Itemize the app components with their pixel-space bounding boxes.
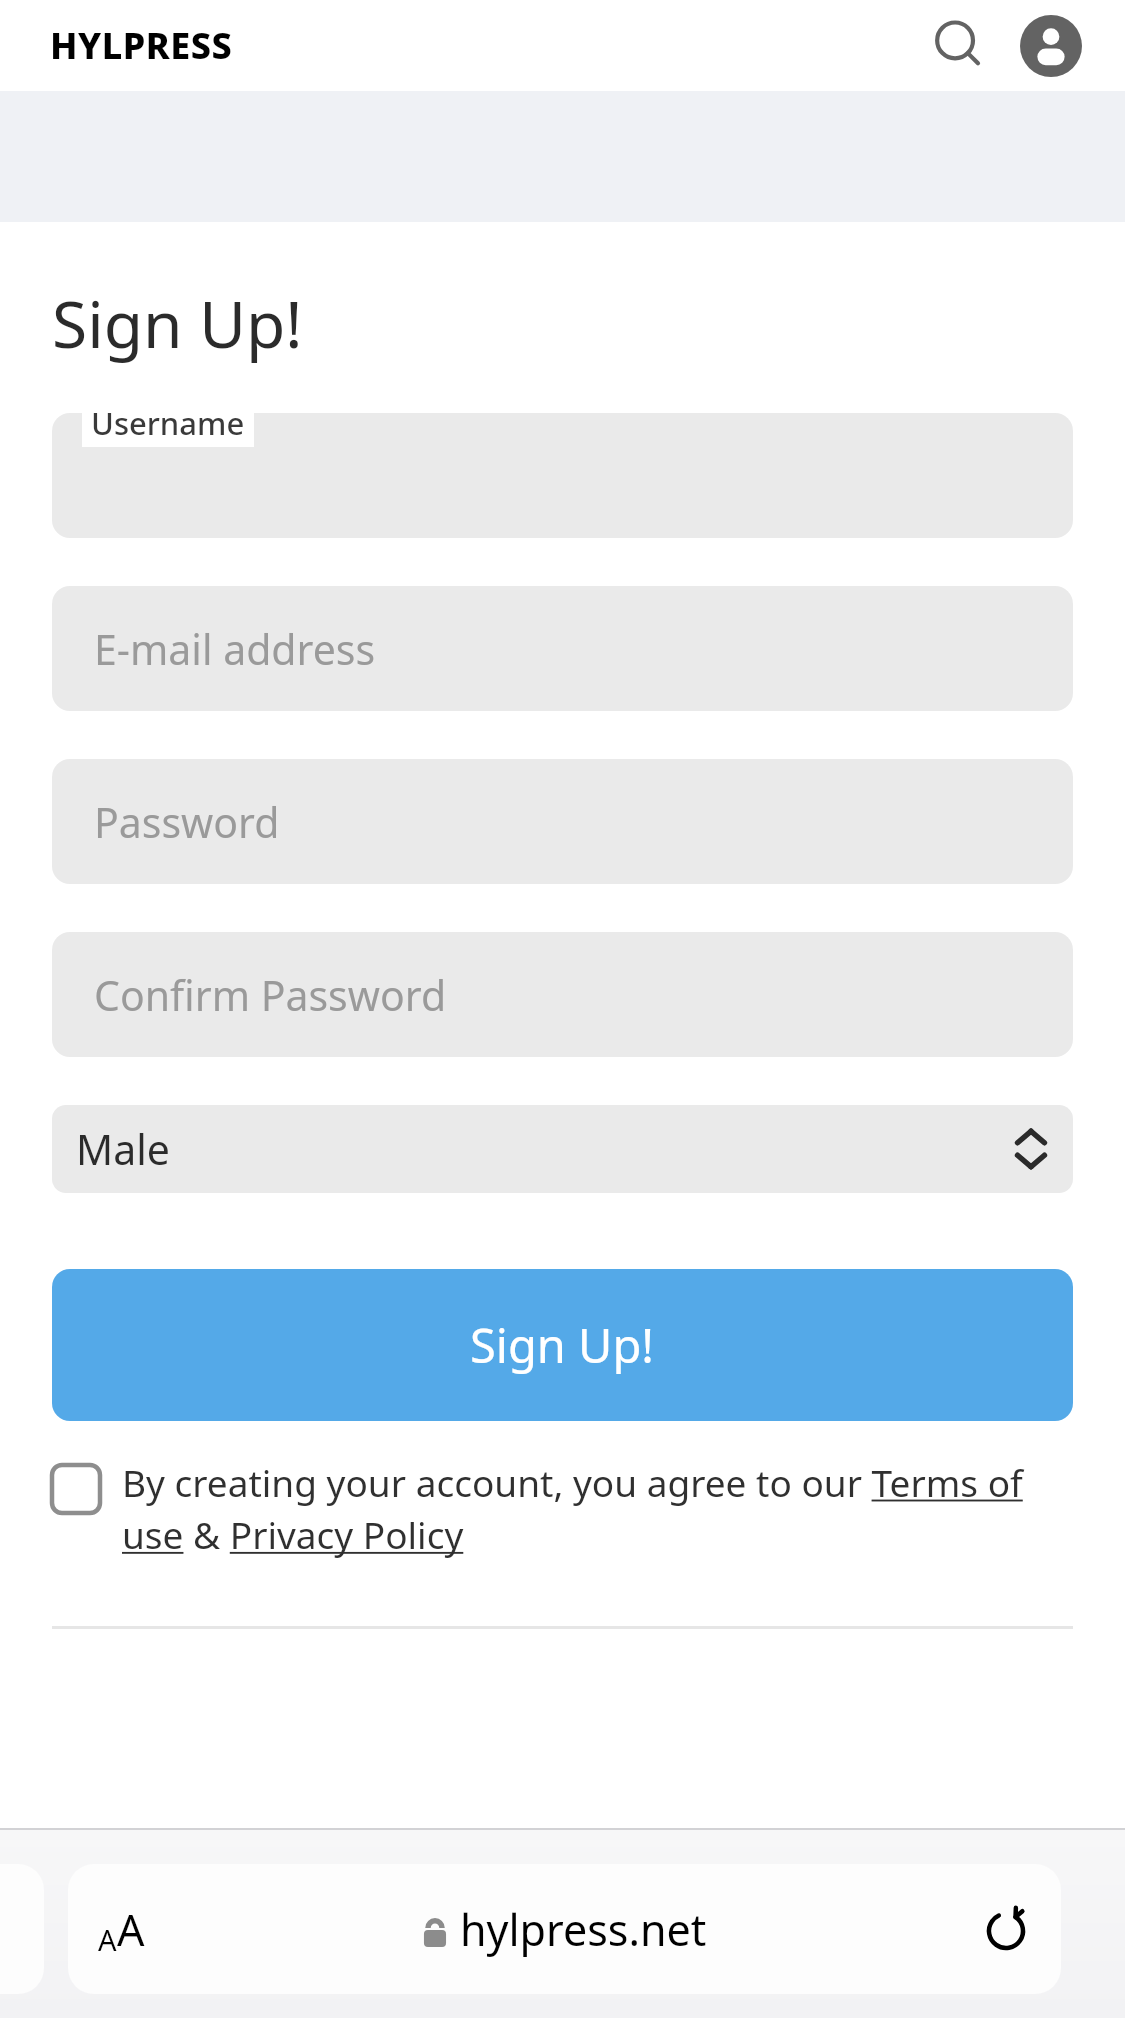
- button[interactable]: Male: [52, 1105, 1073, 1193]
- button[interactable]: E-mail address: [52, 586, 1073, 711]
- staticText: E-mail address: [94, 621, 376, 677]
- button[interactable]: Search: [913, 0, 1005, 91]
- button[interactable]: Text size options: [98, 1900, 145, 1959]
- staticText: A: [117, 1900, 145, 1959]
- staticText: Username: [91, 402, 245, 444]
- button[interactable]: Reload page: [979, 1902, 1033, 1956]
- button[interactable]: [52, 413, 1073, 538]
- button[interactable]: Password: [52, 759, 1073, 884]
- staticText: Male: [76, 1121, 170, 1177]
- staticText: Confirm Password: [94, 967, 447, 1023]
- button[interactable]: Confirm Password: [52, 932, 1073, 1057]
- button[interactable]: Text size options: [68, 1864, 1061, 1994]
- staticText: hylpress.net: [460, 1900, 707, 1959]
- staticText: A: [98, 1920, 117, 1959]
- button[interactable]: Account: [1005, 0, 1097, 91]
- staticText: Password: [94, 794, 280, 850]
- staticText: HYLPRESS: [50, 21, 233, 70]
- staticText: Sign Up!: [52, 280, 303, 367]
- button[interactable]: Agree to terms and privacy policy: [52, 1465, 100, 1513]
- staticText: Sign Up!: [470, 1313, 655, 1377]
- button[interactable]: Sign Up!: [52, 1269, 1073, 1421]
- button[interactable]: By creating your account, you agree to o…: [122, 1457, 1073, 1560]
